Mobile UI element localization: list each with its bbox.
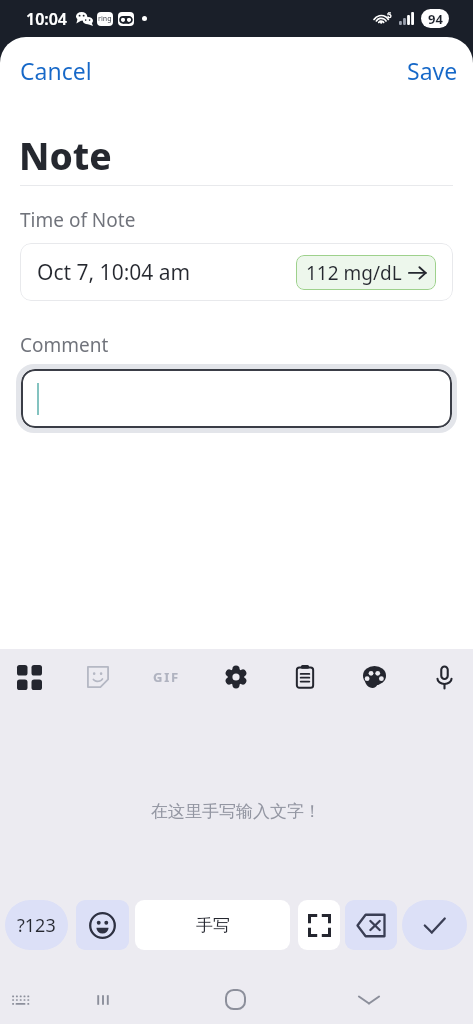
button[interactable]: Home — [202, 975, 268, 1024]
button[interactable]: 手写 — [135, 900, 290, 950]
button[interactable] — [21, 369, 452, 428]
staticText: ?123 — [17, 913, 56, 938]
staticText: Time of Note — [20, 207, 136, 233]
button[interactable]: Stickers — [76, 655, 120, 699]
button[interactable]: GIF — [145, 655, 189, 699]
staticText: 94 — [428, 10, 443, 28]
button[interactable]: 112 mg/dL — [296, 255, 436, 290]
staticText: GIF — [153, 668, 181, 686]
staticText: 10:04 — [26, 8, 68, 30]
button[interactable]: Fullscreen — [298, 900, 340, 950]
button[interactable]: Oct 7, 10:04 am — [20, 243, 453, 301]
button[interactable]: Backspace — [345, 900, 397, 950]
button[interactable]: Hide keyboard — [336, 975, 402, 1024]
button[interactable]: Cancel — [9, 46, 103, 95]
staticText: Note — [19, 130, 112, 180]
button[interactable]: Confirm — [402, 900, 467, 950]
button[interactable]: Recents — [70, 975, 136, 1024]
button[interactable]: Keyboard layouts — [7, 655, 51, 699]
staticText: Cancel — [20, 55, 92, 86]
staticText: Oct 7, 10:04 am — [37, 258, 191, 287]
staticText: Comment — [20, 332, 109, 358]
button[interactable]: Settings — [214, 655, 258, 699]
button[interactable]: Themes — [352, 655, 396, 699]
staticText: Save — [407, 55, 458, 86]
button[interactable]: Clipboard — [283, 655, 327, 699]
button[interactable]: Switch keyboard — [0, 975, 41, 1024]
staticText: 在这里手写输入文字！ — [151, 801, 321, 822]
button[interactable]: Voice input — [422, 655, 466, 699]
staticText: ring — [98, 14, 112, 24]
button[interactable]: ?123 — [5, 900, 68, 950]
staticText: 112 mg/dL — [306, 260, 402, 286]
button[interactable]: Save — [396, 46, 469, 95]
button[interactable]: Emoji — [76, 900, 129, 950]
staticText: 手写 — [196, 915, 230, 936]
